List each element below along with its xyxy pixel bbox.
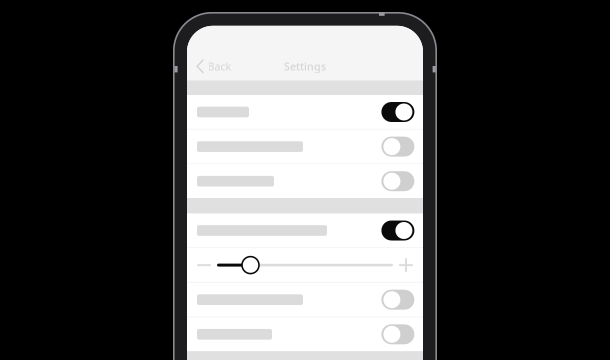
- staticText: Back: [207, 59, 231, 73]
- button[interactable]: Adjust level: [187, 248, 423, 282]
- button[interactable]: Setting four: [187, 214, 423, 247]
- button[interactable]: Setting one: [187, 95, 423, 129]
- button[interactable]: Setting five: [187, 283, 423, 316]
- button[interactable]: Setting three: [187, 164, 423, 198]
- button[interactable]: Back: [187, 53, 241, 79]
- button[interactable]: Setting six: [187, 317, 423, 351]
- button[interactable]: Setting two: [187, 130, 423, 163]
- staticText: Settings: [284, 59, 326, 73]
